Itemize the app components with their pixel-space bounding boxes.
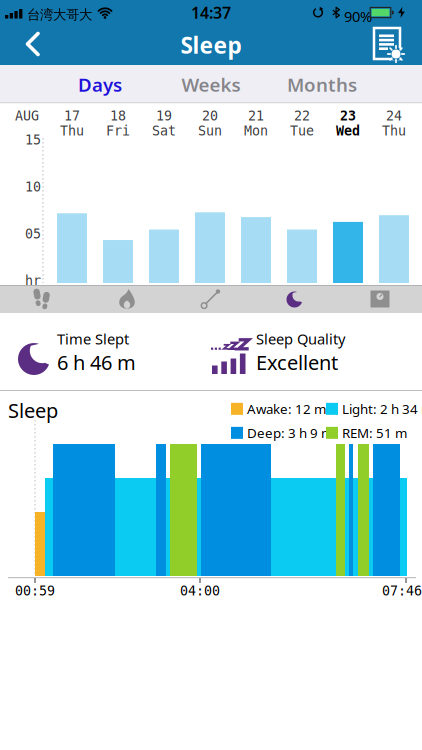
staticText: 10 <box>25 179 41 194</box>
staticText: 24 <box>386 108 402 123</box>
staticText: Weeks <box>181 72 240 97</box>
staticText: 19 <box>156 108 172 123</box>
staticText: Awake: 12 m <box>247 400 326 418</box>
staticText: Excellent <box>256 349 338 376</box>
staticText: 00:59 <box>15 583 55 598</box>
staticText: Sat <box>152 123 176 138</box>
staticText: Mon <box>244 123 268 138</box>
button[interactable]: Days <box>55 66 145 102</box>
button[interactable]: Sleep report <box>365 25 411 65</box>
staticText: 05 <box>25 226 41 241</box>
staticText: Sun <box>198 123 222 138</box>
staticText: Days <box>78 72 122 97</box>
button[interactable]: Months <box>277 66 367 102</box>
staticText: Light: 2 h 34 m <box>342 400 422 418</box>
staticText: Wed <box>336 123 360 138</box>
button[interactable]: Back <box>12 25 56 63</box>
staticText: 07:46 <box>382 583 422 598</box>
staticText: Sleep <box>8 397 58 424</box>
staticText: 22 <box>294 108 310 123</box>
staticText: 17 <box>64 108 80 123</box>
staticText: 20 <box>202 108 218 123</box>
staticText: 90% <box>344 6 372 26</box>
staticText: 04:00 <box>180 583 220 598</box>
staticText: AUG <box>15 108 39 123</box>
staticText: hr <box>25 273 41 288</box>
staticText: Fri <box>106 123 130 138</box>
button[interactable]: Weight <box>350 285 410 313</box>
staticText: 18 <box>110 108 126 123</box>
staticText: Deep: 3 h 9 m <box>247 424 333 442</box>
staticText: Thu <box>60 123 84 138</box>
staticText: 23 <box>340 108 356 123</box>
staticText: REM: 51 m <box>342 424 407 442</box>
button[interactable]: Calories <box>97 285 157 313</box>
button[interactable]: Steps <box>12 285 72 313</box>
staticText: Months <box>287 72 357 97</box>
staticText: 台湾大哥大 <box>27 6 92 23</box>
staticText: Thu <box>382 123 406 138</box>
staticText: 14:37 <box>191 2 231 23</box>
staticText: 15 <box>25 132 41 147</box>
staticText: Tue <box>290 123 314 138</box>
button[interactable]: Weeks <box>166 66 256 102</box>
staticText: Sleep <box>180 30 241 60</box>
staticText: Time Slept <box>57 329 129 348</box>
staticText: 6 h 46 m <box>57 349 136 376</box>
button[interactable]: Sleep <box>265 285 325 313</box>
staticText: Sleep Quality <box>256 329 345 348</box>
staticText: 21 <box>248 108 264 123</box>
button[interactable]: Golf <box>181 285 241 313</box>
